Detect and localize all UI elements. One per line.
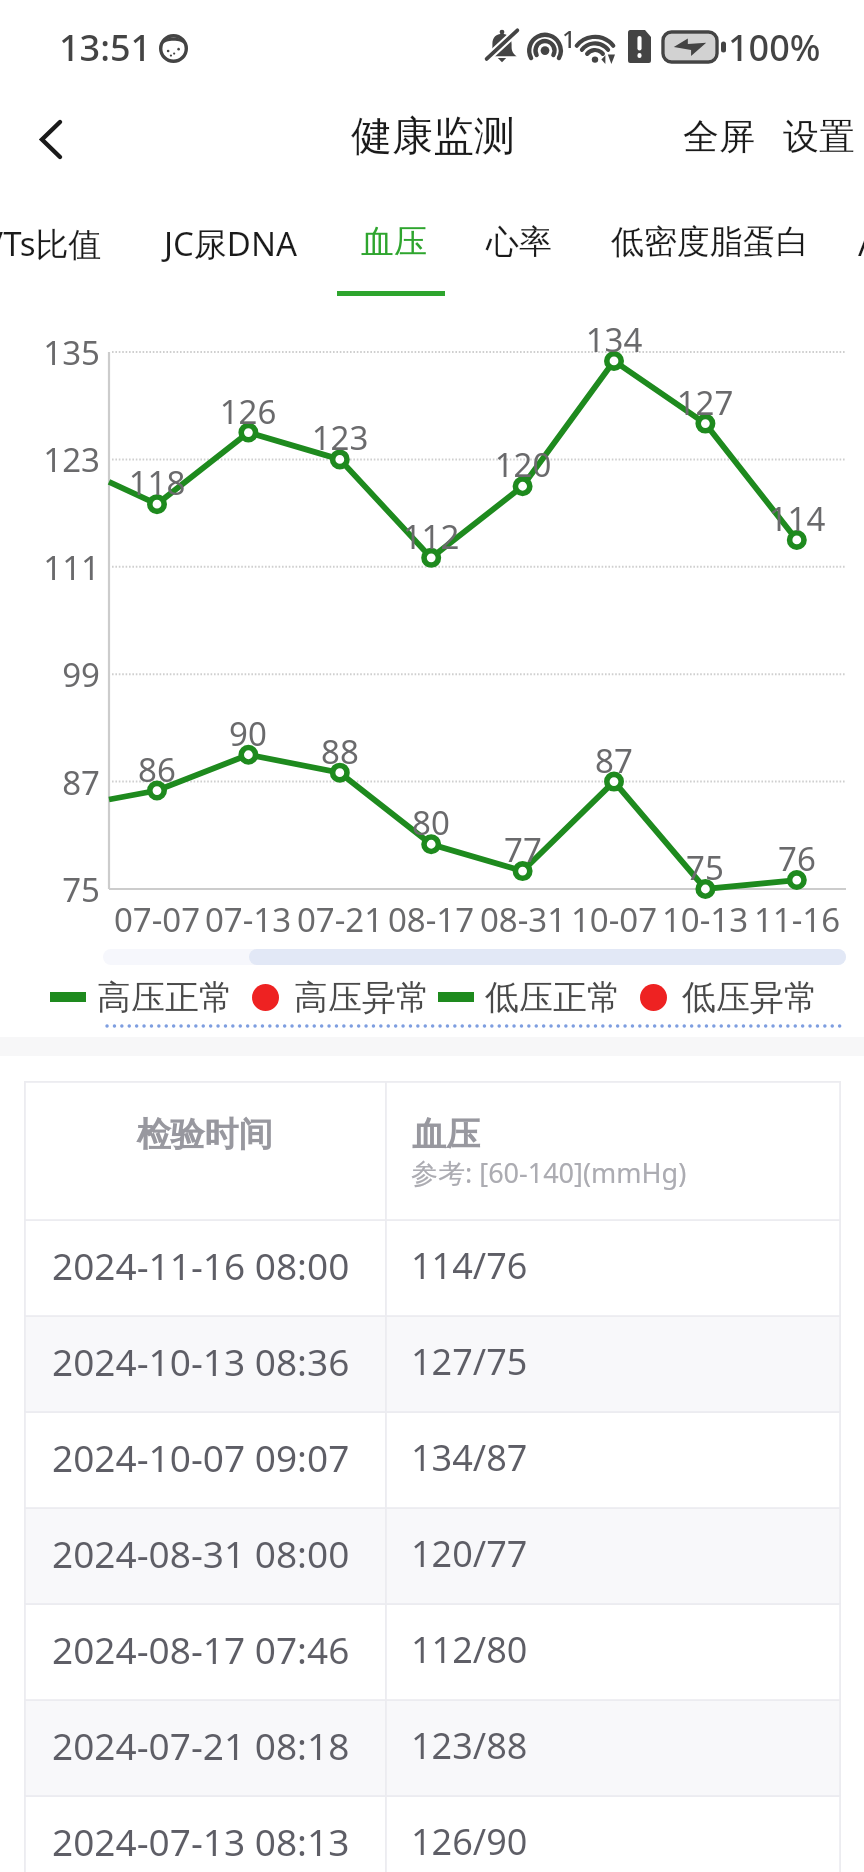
staticText: 120 — [473, 442, 573, 487]
staticText: 123 — [290, 415, 390, 460]
staticText: 75 — [655, 845, 755, 890]
staticText: 123 — [0, 437, 100, 482]
staticText: 87 — [564, 738, 664, 783]
button[interactable]: 高压正常 — [50, 974, 233, 1020]
staticText: 2024-10-07 09:07 — [52, 1432, 350, 1482]
staticText: 127/75 — [411, 1337, 528, 1386]
button[interactable]: 2024-10-07 09:07 — [24, 1413, 841, 1509]
button[interactable]: Back — [18, 107, 82, 171]
button[interactable]: 全屏 — [678, 105, 760, 167]
staticText: 参考: [60-140](mmHg) — [411, 1154, 687, 1191]
staticText: 全屏 — [683, 114, 755, 159]
staticText: 08-17 — [381, 897, 481, 942]
staticText: 75 — [0, 867, 100, 912]
staticText: 低密度脂蛋白 — [611, 221, 809, 263]
staticText: 2024-07-21 08:18 — [52, 1720, 350, 1770]
staticText: 80 — [381, 800, 481, 845]
button[interactable]: 心率 — [462, 185, 576, 295]
staticText: 90 — [198, 711, 298, 756]
staticText: 135 — [0, 330, 100, 375]
staticText: 血压 — [412, 1113, 480, 1156]
button[interactable]: 血压 — [337, 185, 451, 295]
button[interactable]: 2024-08-31 08:00 — [24, 1509, 841, 1605]
staticText: 2024-08-17 07:46 — [52, 1624, 350, 1674]
staticText: 11-16 — [747, 897, 847, 942]
staticText: 2024-10-13 08:36 — [52, 1336, 350, 1386]
staticText: 低压正常 — [485, 976, 621, 1019]
staticText: 2024-08-31 08:00 — [52, 1528, 350, 1578]
button[interactable]: 2024-07-21 08:18 — [24, 1701, 841, 1797]
staticText: 111 — [0, 545, 100, 590]
staticText: 10-13 — [655, 897, 755, 942]
staticText: 07-07 — [107, 897, 207, 942]
staticText: 10-07 — [564, 897, 664, 942]
staticText: 心率 — [486, 221, 552, 263]
staticText: 118 — [107, 460, 207, 505]
staticText: JC尿DNA — [164, 221, 298, 266]
button[interactable]: 2024-07-13 08:13 — [24, 1797, 841, 1872]
button[interactable]: 2024-10-13 08:36 — [24, 1317, 841, 1413]
staticText: 健康监测 — [351, 111, 515, 163]
button[interactable]: 低压异常 — [640, 974, 818, 1020]
staticText: /Ts比值 — [0, 221, 102, 266]
staticText: 114/76 — [411, 1241, 528, 1290]
staticText: 100% — [728, 23, 821, 72]
button[interactable]: /Ts比值 — [0, 185, 126, 295]
staticText: 检验时间 — [24, 1113, 385, 1156]
button[interactable]: A — [834, 185, 864, 295]
button[interactable]: 2024-08-17 07:46 — [24, 1605, 841, 1701]
staticText: 低压异常 — [682, 976, 818, 1019]
staticText: 2024-11-16 08:00 — [52, 1240, 350, 1290]
staticText: A — [858, 221, 864, 266]
staticText: 设置 — [783, 114, 855, 159]
button[interactable]: 低密度脂蛋白 — [587, 185, 833, 295]
staticText: 126 — [198, 389, 298, 434]
staticText: 86 — [107, 747, 207, 792]
staticText: 114 — [747, 496, 847, 541]
staticText: 112 — [381, 514, 481, 559]
staticText: 2024-07-13 08:13 — [52, 1816, 350, 1866]
staticText: 07-13 — [198, 897, 298, 942]
staticText: 血压 — [361, 221, 427, 263]
staticText: 87 — [0, 760, 100, 805]
button[interactable]: 2024-11-16 08:00 — [24, 1221, 841, 1317]
staticText: 127 — [655, 380, 755, 425]
staticText: 1 — [562, 22, 576, 55]
staticText: 76 — [747, 836, 847, 881]
staticText: 120/77 — [411, 1529, 528, 1578]
staticText: 88 — [290, 729, 390, 774]
staticText: 77 — [473, 827, 573, 872]
staticText: 112/80 — [411, 1625, 528, 1674]
staticText: 123/88 — [411, 1721, 528, 1770]
staticText: 07-21 — [290, 897, 390, 942]
staticText: 08-31 — [473, 897, 573, 942]
staticText: 13:51 — [59, 23, 152, 72]
button[interactable]: JC尿DNA — [140, 185, 322, 295]
staticText: 高压异常 — [294, 976, 430, 1019]
staticText: 134 — [564, 317, 664, 362]
staticText: 134/87 — [411, 1433, 528, 1482]
staticText: 99 — [0, 652, 100, 697]
button[interactable]: 低压正常 — [438, 974, 621, 1020]
staticText: 高压正常 — [97, 976, 233, 1019]
staticText: 126/90 — [411, 1817, 528, 1866]
button[interactable]: 设置 — [778, 105, 860, 167]
button[interactable]: 高压异常 — [252, 974, 430, 1020]
